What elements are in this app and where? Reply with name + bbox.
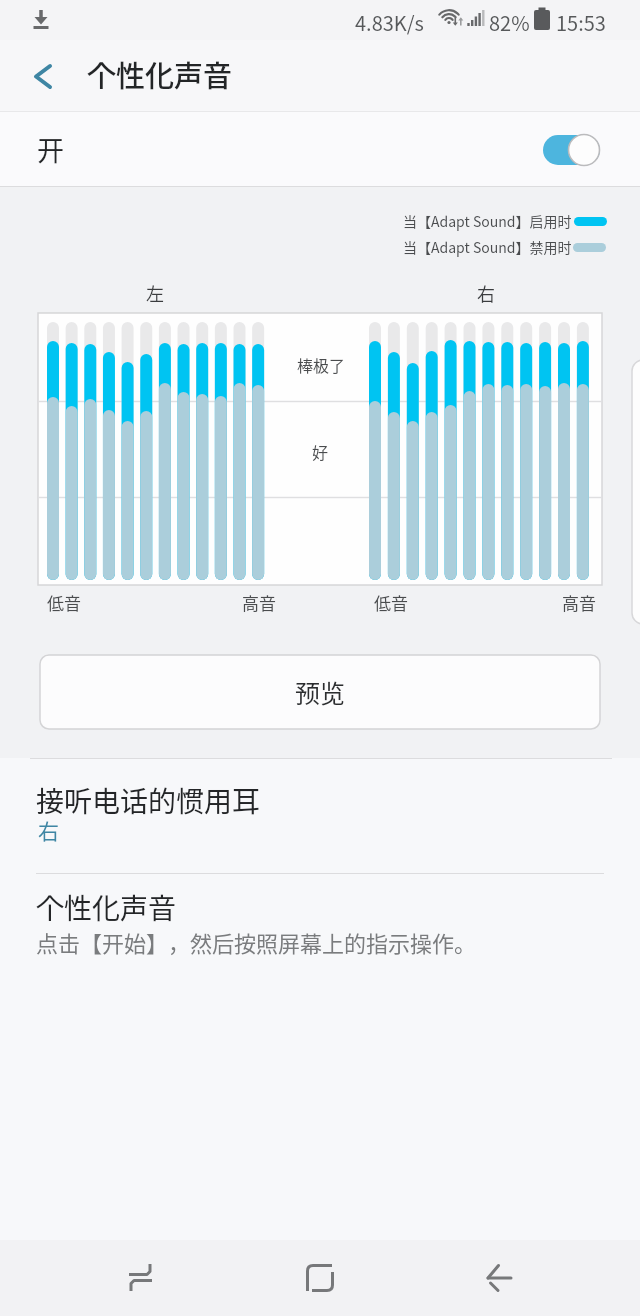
staticText: 点击【开始】，然后按照屏幕上的指示操作。 (36, 926, 477, 958)
staticText: 预览 (295, 674, 346, 710)
staticText: 开 (37, 130, 64, 169)
staticText: 好 (312, 440, 329, 463)
button[interactable] (104, 1240, 180, 1316)
button[interactable] (282, 1240, 358, 1316)
staticText: 4.83K/s (355, 8, 424, 37)
button[interactable] (24, 62, 60, 98)
button[interactable]: 预览 (40, 655, 600, 729)
staticText: 个性化声音 (87, 53, 233, 95)
staticText: 接听电话的惯用耳 (36, 780, 261, 821)
staticText: 高音 (242, 590, 276, 615)
staticText: 低音 (374, 590, 408, 615)
staticText: 棒极了 (297, 353, 346, 376)
button[interactable]: 开 (0, 112, 640, 186)
staticText: 右 (477, 280, 495, 306)
staticText: 15:53 (556, 8, 606, 37)
staticText: 低音 (47, 590, 81, 615)
staticText: 高音 (562, 590, 596, 615)
staticText: 左 (146, 280, 164, 306)
staticText: 当【Adapt Sound】启用时 (403, 211, 572, 231)
staticText: 右 (38, 815, 59, 845)
staticText: 82% (489, 8, 530, 37)
button[interactable]: 接听电话的惯用耳 (0, 759, 640, 873)
staticText: 个性化声音 (36, 887, 177, 928)
button[interactable]: 个性化声音 (0, 874, 640, 984)
staticText: 当【Adapt Sound】禁用时 (403, 237, 572, 257)
button[interactable] (462, 1240, 538, 1316)
